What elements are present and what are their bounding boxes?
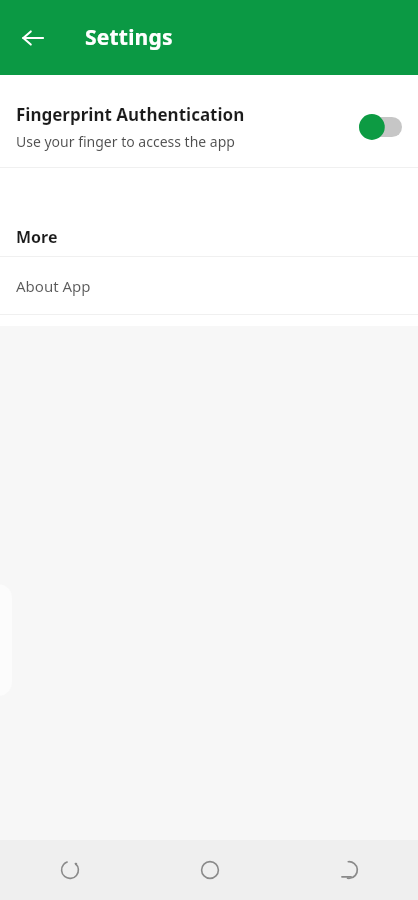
staticText: Settings xyxy=(85,23,173,52)
button[interactable]: Recents xyxy=(0,840,140,900)
staticText: Use your finger to access the app xyxy=(16,132,235,151)
button[interactable]: Fingerprint Authentication toggle xyxy=(358,113,402,141)
button[interactable]: Home xyxy=(140,840,279,900)
button[interactable]: About App xyxy=(0,257,418,314)
button[interactable]: Fingerprint Authentication xyxy=(0,88,418,166)
staticText: More xyxy=(16,226,58,248)
staticText: Fingerprint Authentication xyxy=(16,103,245,126)
staticText: About App xyxy=(16,276,91,296)
button[interactable]: Back xyxy=(10,15,56,61)
button[interactable]: Back xyxy=(279,840,418,900)
